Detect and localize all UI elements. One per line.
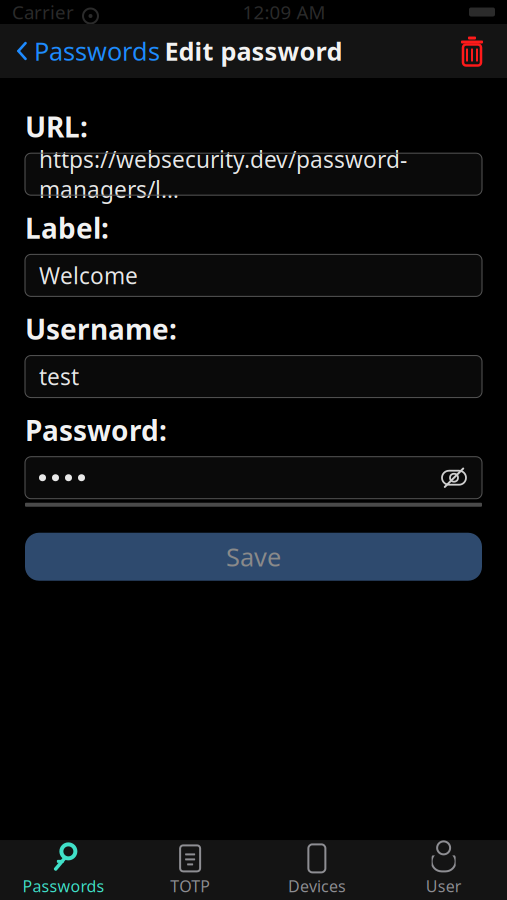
button[interactable]: Passwords	[0, 26, 160, 76]
staticText: Carrier	[12, 0, 74, 24]
staticText: Username:	[25, 310, 177, 348]
staticText: Save	[226, 540, 281, 573]
staticText: User	[426, 875, 462, 897]
staticText: 12:09 AM	[242, 0, 325, 24]
staticText: Password:	[25, 411, 167, 449]
staticText: Passwords	[34, 34, 160, 68]
staticText: Devices	[288, 875, 346, 897]
staticText: Welcome	[39, 260, 138, 290]
staticText: Edit password	[164, 34, 342, 68]
button[interactable]: Save	[25, 533, 482, 581]
staticText: Label:	[25, 209, 109, 246]
staticText: Passwords	[22, 875, 104, 897]
button[interactable]: Delete password	[459, 30, 507, 72]
button[interactable]: TOTP	[127, 839, 254, 900]
staticText: test	[39, 361, 79, 392]
button[interactable]: User	[380, 839, 507, 900]
button[interactable]: Passwords	[0, 839, 127, 900]
staticText: TOTP	[170, 875, 210, 897]
button[interactable]: Devices	[253, 839, 380, 900]
staticText: https://websecurity.dev/password-manager…	[39, 144, 407, 204]
staticText: URL:	[25, 108, 88, 145]
button[interactable]: Show password	[440, 464, 468, 492]
